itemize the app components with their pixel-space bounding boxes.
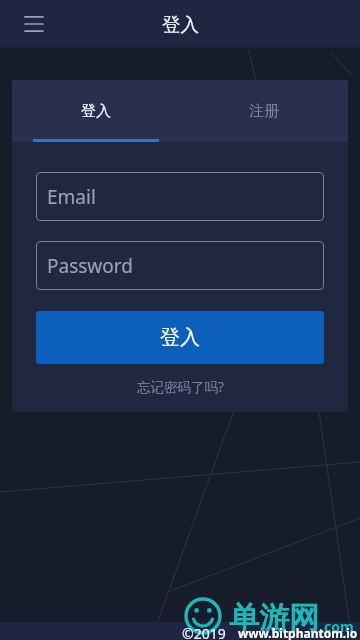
- button[interactable]: Open navigation menu: [16, 6, 52, 42]
- staticText: 单游网: [229, 599, 319, 637]
- staticText: 注册: [249, 102, 279, 121]
- staticText: ©2019: [182, 624, 226, 640]
- staticText: 登入: [162, 13, 199, 36]
- staticText: Email: [47, 184, 96, 210]
- button[interactable]: 忘记密码了吗?: [129, 373, 232, 401]
- staticText: .com: [320, 617, 354, 636]
- button[interactable]: Password: [36, 241, 324, 290]
- staticText: 登入: [160, 325, 200, 350]
- button[interactable]: 登入: [36, 311, 324, 364]
- button[interactable]: Email: [36, 172, 324, 221]
- staticText: www.bitphantom.io: [238, 625, 358, 640]
- staticText: Password: [47, 253, 133, 279]
- button[interactable]: 注册: [180, 80, 348, 142]
- button[interactable]: 登入: [12, 80, 180, 142]
- staticText: 登入: [81, 102, 111, 121]
